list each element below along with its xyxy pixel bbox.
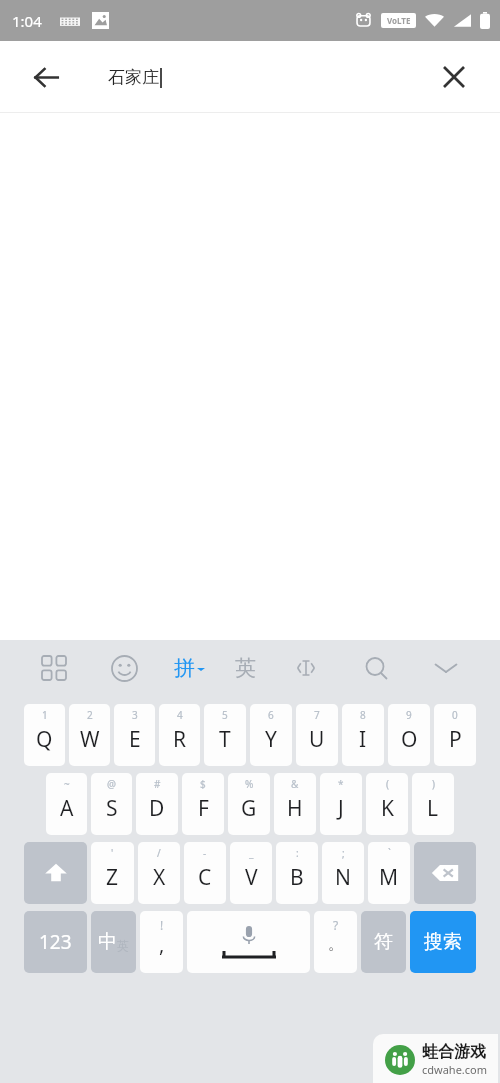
button[interactable]: Clear xyxy=(430,53,478,101)
button[interactable]: 2 xyxy=(69,704,110,766)
button[interactable]: # xyxy=(136,773,178,835)
button[interactable]: 5 xyxy=(204,704,246,766)
button[interactable]: 1 xyxy=(24,704,65,766)
staticText: Y xyxy=(265,725,277,754)
button[interactable]: ) xyxy=(412,773,454,835)
staticText: 。 xyxy=(328,935,343,954)
staticText: F xyxy=(198,794,209,823)
button[interactable]: % xyxy=(228,773,270,835)
button[interactable]: Backspace xyxy=(414,842,476,904)
staticText: S xyxy=(106,794,118,823)
staticText: H xyxy=(287,794,303,823)
button[interactable]: Search xyxy=(356,648,396,688)
staticText: 英 xyxy=(117,938,129,953)
staticText: K xyxy=(381,794,394,823)
staticText: D xyxy=(149,794,165,823)
button[interactable]: Shift xyxy=(24,842,87,904)
staticText: ? xyxy=(333,917,339,933)
staticText: Z xyxy=(106,863,119,892)
staticText: 2 xyxy=(87,708,93,722)
button[interactable]: Cursor xyxy=(286,648,326,688)
staticText: ( xyxy=(386,777,389,791)
button[interactable]: Emoji xyxy=(104,648,144,688)
staticText: W xyxy=(80,725,100,754)
staticText: 英 xyxy=(235,655,256,681)
button[interactable]: ; xyxy=(322,842,364,904)
staticText: 0 xyxy=(452,708,458,722)
button[interactable]: 3 xyxy=(114,704,155,766)
staticText: : xyxy=(296,846,299,860)
button[interactable]: 拼 xyxy=(174,655,205,681)
button[interactable]: 7 xyxy=(296,704,338,766)
staticText: 中 xyxy=(98,930,117,954)
staticText: $ xyxy=(200,777,206,791)
button[interactable]: * xyxy=(320,773,362,835)
staticText: R xyxy=(173,725,187,754)
staticText: @ xyxy=(107,777,116,791)
staticText: 1:04 xyxy=(12,11,42,31)
staticText: 8 xyxy=(360,708,366,722)
staticText: ) xyxy=(432,777,435,791)
staticText: 1 xyxy=(42,708,48,722)
button[interactable]: / xyxy=(138,842,180,904)
staticText: 4 xyxy=(177,708,183,722)
staticText: % xyxy=(245,777,254,791)
button[interactable]: 英 xyxy=(235,655,256,681)
staticText: C xyxy=(198,863,212,892)
staticText: M xyxy=(379,863,399,892)
button[interactable]: 0 xyxy=(434,704,476,766)
staticText: ! xyxy=(160,917,164,933)
staticText: X xyxy=(153,863,166,892)
button[interactable]: $ xyxy=(182,773,224,835)
staticText: B xyxy=(290,863,304,892)
staticText: T xyxy=(219,725,231,754)
staticText: 5 xyxy=(222,708,228,722)
button[interactable]: Menu xyxy=(34,648,74,688)
button[interactable]: 搜索 xyxy=(410,911,476,973)
button[interactable]: ~ xyxy=(46,773,87,835)
staticText: 蛙合游戏 xyxy=(422,1042,486,1062)
button[interactable]: : xyxy=(276,842,318,904)
staticText: V xyxy=(245,863,258,892)
button[interactable]: Hide keyboard xyxy=(426,648,466,688)
staticText: 6 xyxy=(268,708,274,722)
button[interactable]: 9 xyxy=(388,704,430,766)
staticText: ~ xyxy=(64,777,70,791)
staticText: ' xyxy=(111,846,114,860)
button[interactable]: _ xyxy=(230,842,272,904)
staticText: # xyxy=(154,777,161,791)
button[interactable]: 中 xyxy=(91,911,136,973)
button[interactable]: 8 xyxy=(342,704,384,766)
staticText: ` xyxy=(388,846,391,860)
button[interactable]: ! xyxy=(140,911,183,973)
staticText: O xyxy=(401,725,418,754)
staticText: Q xyxy=(36,725,53,754)
staticText: E xyxy=(129,725,141,754)
staticText: 符 xyxy=(374,930,393,954)
button[interactable]: - xyxy=(184,842,226,904)
button[interactable]: ` xyxy=(368,842,410,904)
staticText: I xyxy=(359,725,367,754)
staticText: VoLTE xyxy=(387,15,411,26)
button[interactable]: ( xyxy=(366,773,408,835)
staticText: J xyxy=(338,794,344,823)
staticText: 3 xyxy=(132,708,138,722)
button[interactable]: Back xyxy=(22,53,70,101)
button[interactable]: Space / Voice input xyxy=(187,911,310,973)
button[interactable]: 6 xyxy=(250,704,292,766)
staticText: P xyxy=(449,725,462,754)
button[interactable]: & xyxy=(274,773,316,835)
staticText: G xyxy=(241,794,257,823)
staticText: A xyxy=(60,794,74,823)
staticText: / xyxy=(157,846,161,860)
staticText: U xyxy=(309,725,325,754)
button[interactable]: 4 xyxy=(159,704,200,766)
button[interactable]: ' xyxy=(91,842,134,904)
button[interactable]: 符 xyxy=(361,911,406,973)
button[interactable]: ? xyxy=(314,911,357,973)
button[interactable]: @ xyxy=(91,773,132,835)
button[interactable]: 123 xyxy=(24,911,87,973)
staticText: _ xyxy=(249,846,254,860)
staticText: 石家庄 xyxy=(108,67,159,88)
staticText: , xyxy=(159,931,165,958)
